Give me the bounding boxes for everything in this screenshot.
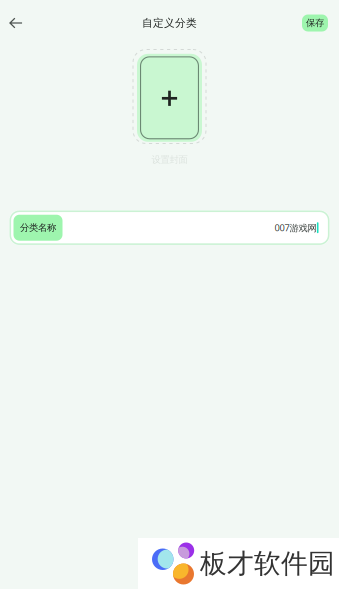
staticText: 保存 [306, 17, 324, 29]
staticText: 分类名称 [20, 222, 56, 233]
button[interactable]: 返回 [0, 10, 29, 36]
button[interactable]: 设置封面 [132, 49, 206, 144]
button[interactable]: 保存 [302, 14, 328, 31]
button[interactable]: 分类名称 [0, 210, 339, 245]
staticText: 自定义分类 [142, 16, 197, 29]
staticText: 设置封面 [151, 154, 187, 165]
staticText: 007游戏网 [274, 221, 316, 234]
staticText: 板才软件园 [200, 547, 335, 580]
